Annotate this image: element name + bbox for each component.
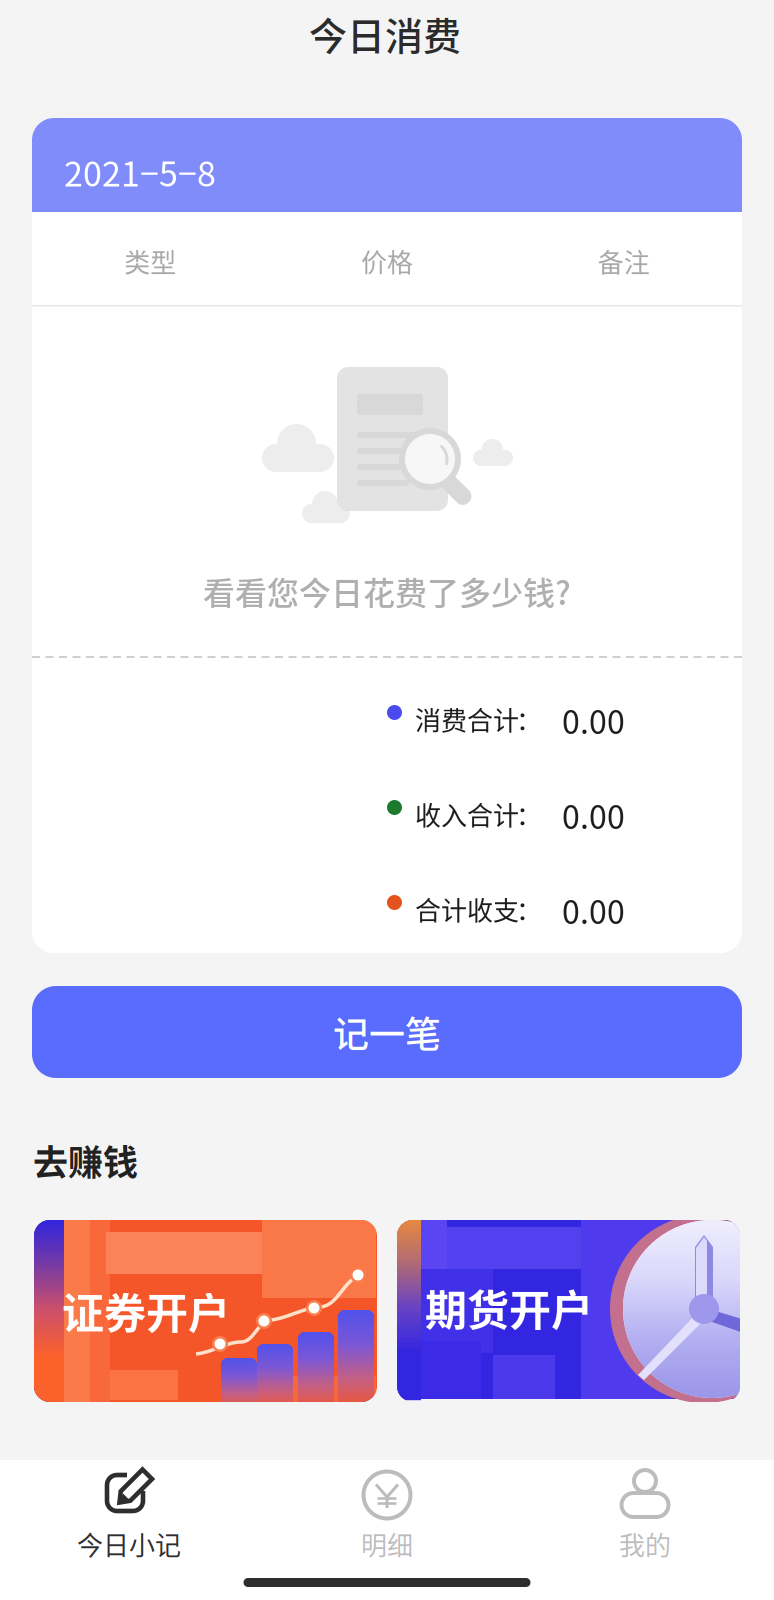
staticText: 今日消费 [309, 6, 461, 61]
staticText: 记一笔 [333, 1006, 441, 1058]
staticText: 证券开户 [62, 1280, 230, 1341]
button[interactable]: 明细 [258, 1460, 516, 1570]
button[interactable]: 我的 [516, 1460, 774, 1570]
staticText: 消费合计 [415, 700, 519, 738]
staticText: 收入合计 [415, 795, 519, 833]
staticText: 0.00 [562, 792, 625, 838]
staticText: 类型 [124, 242, 176, 280]
staticText: ： [516, 700, 542, 738]
staticText: 0.00 [562, 887, 625, 933]
button[interactable]: 记一笔 [32, 986, 742, 1078]
staticText: 今日小记 [77, 1525, 181, 1563]
staticText: 0.00 [562, 697, 625, 743]
staticText: 明细 [361, 1525, 413, 1563]
staticText: 去赚钱 [33, 1135, 138, 1186]
button[interactable]: 期货开户 [397, 1220, 740, 1402]
staticText: 期货开户 [425, 1277, 593, 1338]
staticText: 备注 [598, 242, 650, 280]
staticText: 价格 [361, 242, 413, 280]
staticText: 合计收支 [415, 890, 519, 928]
staticText: ： [516, 795, 542, 833]
staticText: 2021−5−8 [64, 147, 216, 196]
button[interactable]: 证券开户 [34, 1220, 377, 1402]
staticText: ： [516, 890, 542, 928]
staticText: 看看您今日花费了多少钱? [203, 568, 571, 614]
staticText: 我的 [619, 1525, 671, 1563]
button[interactable]: 今日小记 [0, 1460, 258, 1570]
